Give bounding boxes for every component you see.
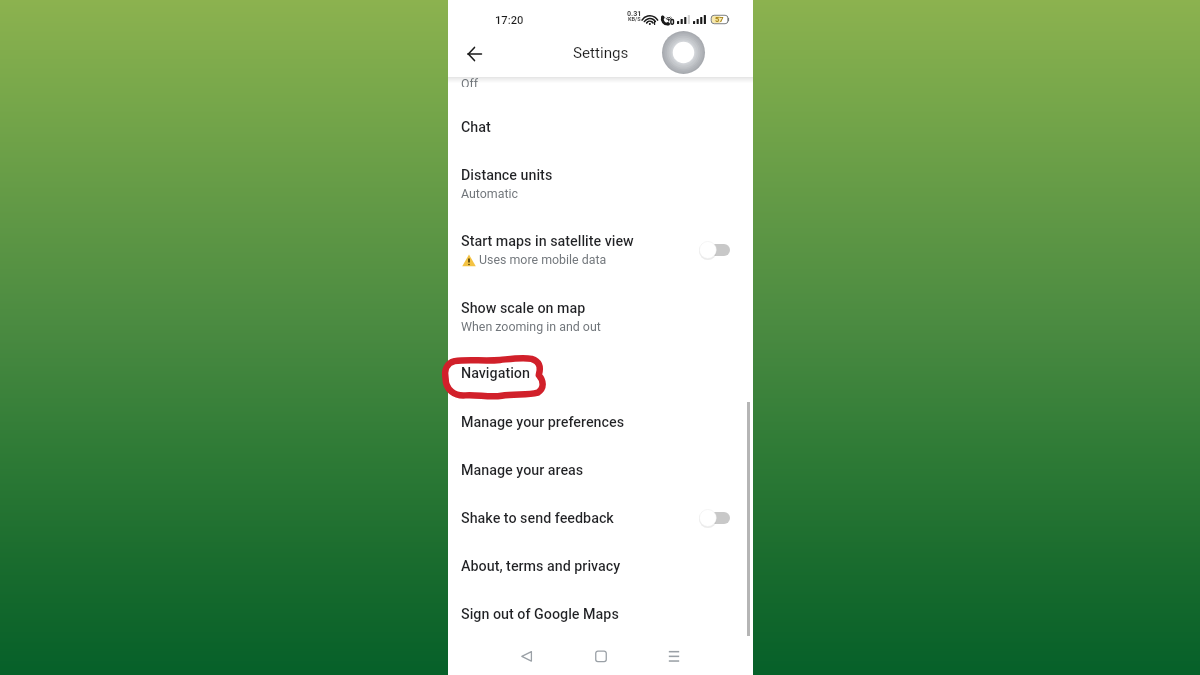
button[interactable]: Chat (448, 109, 753, 145)
button[interactable]: About, terms and privacy (448, 548, 753, 584)
staticText: Start maps in satellite view (461, 233, 634, 250)
staticText: Shake to send feedback (461, 510, 614, 527)
staticText: Manage your preferences (461, 414, 625, 431)
button[interactable]: Manage your areas (448, 452, 753, 488)
staticText: Sign out of Google Maps (461, 606, 619, 623)
staticText: Chat (461, 119, 491, 136)
staticText: 17:20 (495, 14, 524, 27)
staticText: Settings (573, 44, 629, 62)
button[interactable]: Manage your preferences (448, 404, 753, 440)
staticText: Distance units (461, 167, 553, 184)
button[interactable]: Back (513, 643, 541, 671)
button[interactable]: Start maps in satellite view (448, 223, 753, 271)
button[interactable]: Show scale on map (448, 290, 753, 338)
staticText: 0.31 (627, 9, 642, 17)
button[interactable]: Back (461, 38, 493, 70)
staticText: When zooming in and out (461, 319, 601, 334)
staticText: Automatic (461, 186, 519, 201)
staticText: Navigation (461, 365, 530, 382)
staticText: Manage your areas (461, 462, 584, 479)
button[interactable]: Recent apps (660, 643, 688, 671)
staticText: KB/S (628, 16, 641, 23)
staticText: Uses more mobile data (479, 252, 607, 267)
staticText: Off (461, 78, 479, 87)
button[interactable]: Shake to send feedback (448, 500, 753, 536)
staticText: 57 (715, 15, 724, 24)
staticText: About, terms and privacy (461, 558, 621, 575)
button[interactable]: Navigation (448, 355, 753, 391)
staticText: Show scale on map (461, 300, 586, 317)
button[interactable]: Toggle (697, 237, 737, 263)
button[interactable]: Distance units (448, 157, 753, 205)
button[interactable]: Home (587, 643, 615, 671)
button[interactable]: Sign out of Google Maps (448, 596, 753, 632)
button[interactable]: Toggle (697, 505, 737, 531)
